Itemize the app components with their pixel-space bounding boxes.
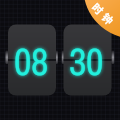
button[interactable]: Flip clock 08:30: [0, 0, 120, 120]
